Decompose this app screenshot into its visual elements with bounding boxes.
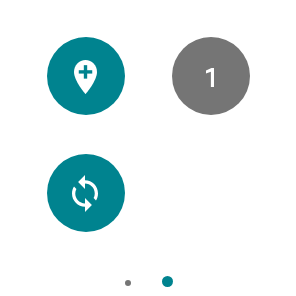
button[interactable]: Add place	[47, 37, 125, 115]
button[interactable]: Sync	[47, 154, 125, 232]
button[interactable]: 1 saved place	[172, 37, 250, 115]
